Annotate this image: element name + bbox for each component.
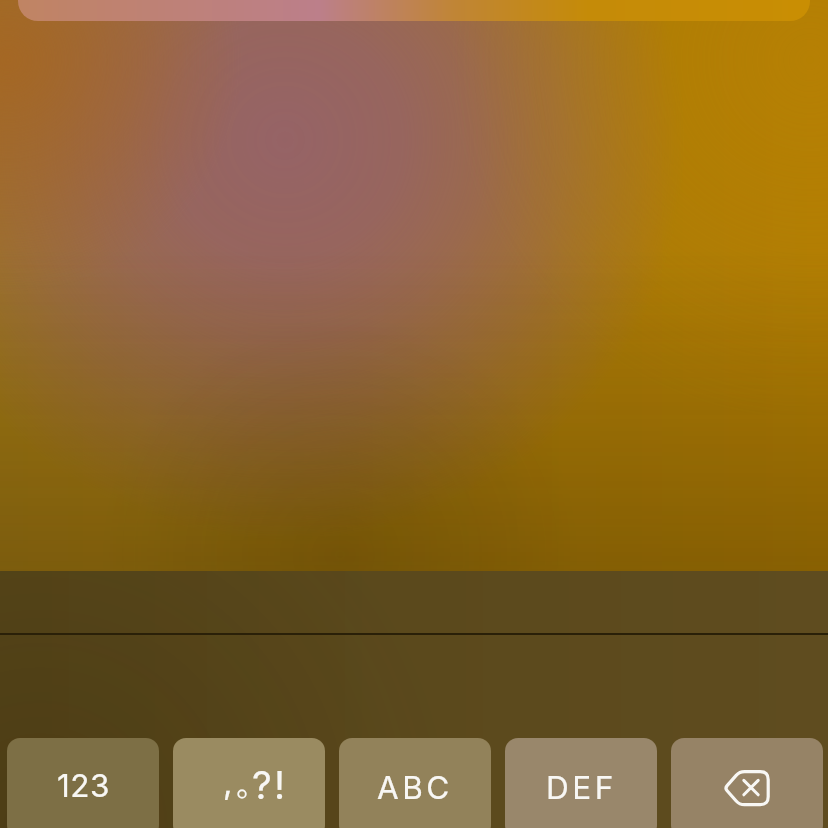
button[interactable] xyxy=(18,0,810,21)
button[interactable]: , xyxy=(173,738,325,828)
staticText: ABC xyxy=(377,768,453,806)
staticText: , xyxy=(223,762,233,802)
button[interactable]: ABC xyxy=(339,738,491,828)
staticText: DEF xyxy=(546,768,617,806)
button[interactable]: 123 xyxy=(7,738,159,828)
button[interactable] xyxy=(671,738,823,828)
button[interactable]: DEF xyxy=(505,738,657,828)
staticText: ! xyxy=(274,762,286,809)
staticText: ? xyxy=(252,762,272,809)
staticText: 123 xyxy=(57,766,110,804)
